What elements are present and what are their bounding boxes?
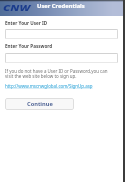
staticText: Enter Your User ID bbox=[5, 20, 48, 26]
staticText: visit the web site below to sign up. bbox=[5, 73, 77, 79]
button[interactable] bbox=[5, 29, 118, 39]
staticText: If you do not have a User ID or Password… bbox=[5, 68, 108, 74]
button[interactable]: http://www.mscnwglobal.com/SignUp.asp bbox=[5, 83, 93, 89]
staticText: User Credentials bbox=[37, 2, 85, 10]
staticText: CNW bbox=[3, 2, 31, 13]
button[interactable]: Continue bbox=[5, 98, 74, 110]
staticText: Continue bbox=[27, 100, 53, 108]
staticText: Enter Your Password bbox=[5, 43, 53, 49]
button[interactable] bbox=[5, 53, 118, 63]
